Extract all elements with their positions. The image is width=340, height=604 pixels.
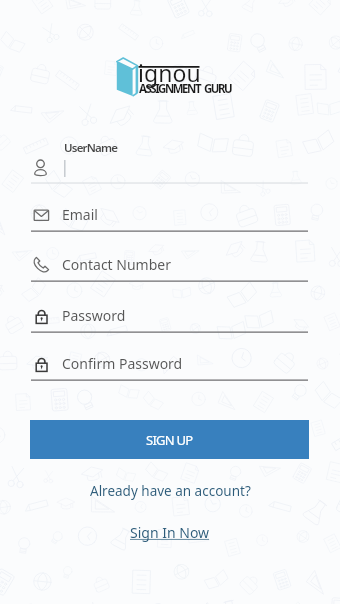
staticText: Contact Number bbox=[62, 255, 171, 274]
staticText: Email bbox=[62, 205, 98, 224]
staticText: Already have an account? bbox=[90, 482, 251, 500]
button[interactable]: Contact Number bbox=[30, 245, 309, 287]
button[interactable]: SIGN UP bbox=[30, 420, 309, 459]
button[interactable]: Sign In Now bbox=[124, 520, 216, 545]
staticText: ASSIGNMENT bbox=[139, 81, 201, 97]
staticText: ignou bbox=[138, 57, 201, 88]
staticText: GURU bbox=[204, 81, 232, 97]
button[interactable]: Password bbox=[30, 296, 309, 338]
button[interactable]: Email bbox=[30, 195, 309, 237]
staticText: Sign In Now bbox=[130, 523, 210, 542]
button[interactable]: Confirm Password bbox=[30, 344, 309, 386]
button[interactable]: UserName bbox=[30, 147, 309, 189]
staticText: SIGN UP bbox=[146, 431, 193, 449]
button[interactable]: Already have an account? bbox=[84, 479, 257, 503]
staticText: Confirm Password bbox=[62, 354, 183, 373]
staticText: Password bbox=[62, 306, 126, 325]
staticText: UserName bbox=[64, 140, 118, 156]
